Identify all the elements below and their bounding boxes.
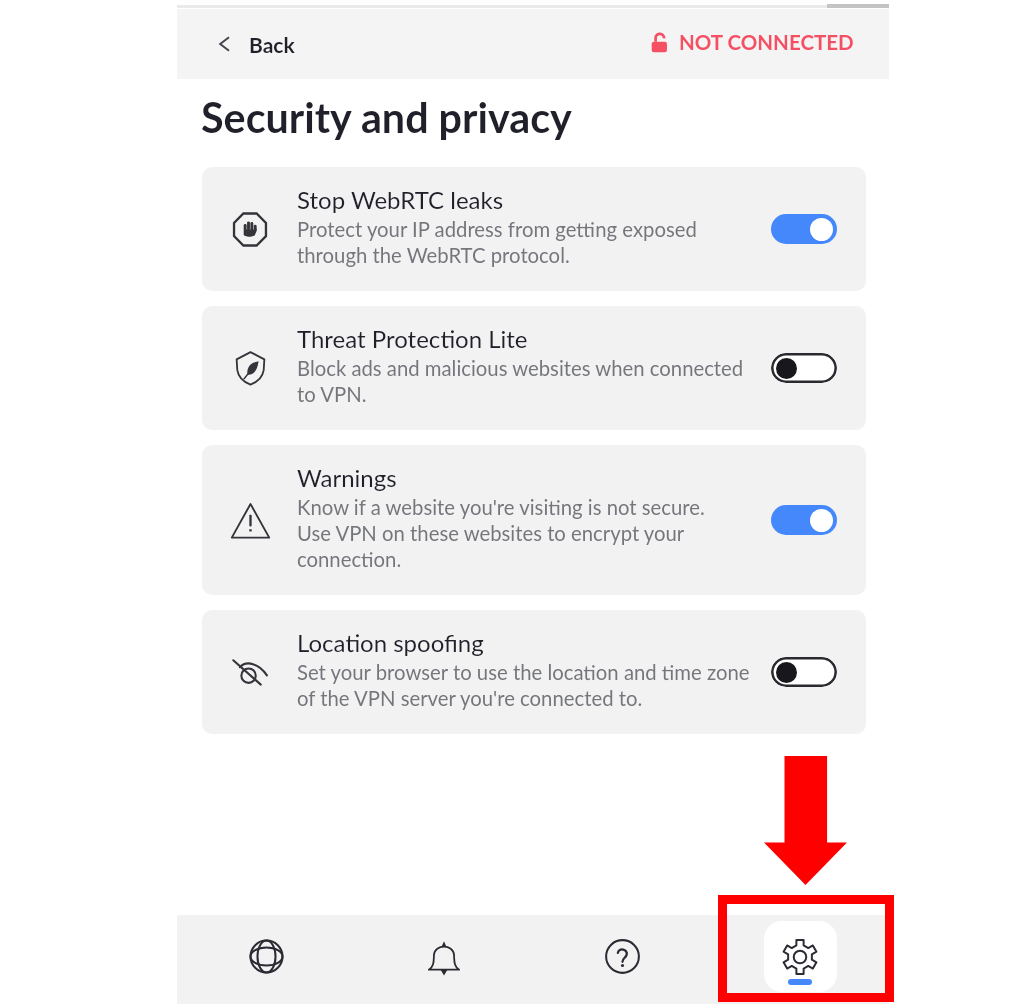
staticText: Back <box>249 32 295 57</box>
staticText: Block ads and malicious websites when co… <box>297 356 744 380</box>
button[interactable]: Notifications <box>355 915 533 1004</box>
staticText: Protect your IP address from getting exp… <box>297 217 697 241</box>
staticText: to VPN. <box>297 382 367 406</box>
button[interactable]: Toggle off <box>771 353 837 383</box>
button[interactable]: Threat Protection Lite <box>202 306 866 430</box>
staticText: connection. <box>297 547 402 571</box>
staticText: Stop WebRTC leaks <box>297 185 504 214</box>
button[interactable]: Warnings <box>202 445 866 595</box>
staticText: NOT CONNECTED <box>679 30 854 55</box>
button[interactable]: Stop WebRTC leaks <box>202 167 866 291</box>
button[interactable]: Toggle on <box>771 505 837 535</box>
staticText: Set your browser to use the location and… <box>297 660 750 684</box>
staticText: through the WebRTC protocol. <box>297 243 570 267</box>
staticText: Location spoofing <box>297 628 484 657</box>
staticText: Security and privacy <box>201 92 572 142</box>
staticText: Use VPN on these websites to encrypt you… <box>297 521 685 545</box>
button[interactable]: Settings <box>711 915 889 1004</box>
staticText: Know if a website you're visiting is not… <box>297 495 705 519</box>
staticText: Warnings <box>297 463 397 492</box>
button[interactable]: Back <box>201 16 313 72</box>
staticText: of the VPN server you're connected to. <box>297 686 643 710</box>
button[interactable]: Location spoofing <box>202 610 866 734</box>
button[interactable]: Toggle off <box>771 657 837 687</box>
button[interactable]: NOT CONNECTED <box>637 14 868 70</box>
staticText: Threat Protection Lite <box>297 324 528 353</box>
button[interactable]: Toggle on <box>771 214 837 244</box>
button[interactable]: Help <box>533 915 711 1004</box>
button[interactable]: Browse <box>177 915 355 1004</box>
